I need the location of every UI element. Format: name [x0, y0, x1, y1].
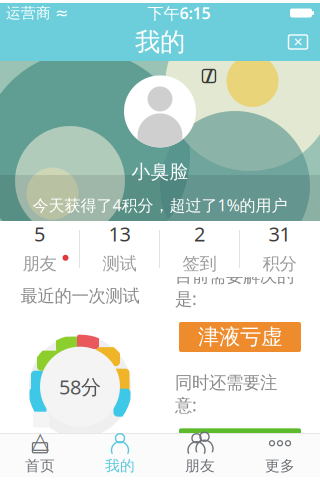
button[interactable]: 我的: [80, 434, 160, 477]
staticText: 最近的一次测试: [20, 285, 139, 307]
button[interactable]: 31: [240, 221, 320, 277]
staticText: 同时还需要注意:: [175, 372, 277, 416]
button[interactable]: Messages: [276, 23, 320, 61]
button[interactable]: 13: [80, 221, 160, 277]
staticText: 小臭脸: [131, 160, 188, 183]
staticText: 签到: [182, 253, 216, 274]
staticText: 58分: [59, 373, 101, 400]
staticText: 积分: [262, 253, 296, 274]
staticText: ✕: [293, 35, 303, 49]
staticText: 气虚: [219, 430, 261, 456]
button[interactable]: 2: [160, 221, 240, 277]
staticText: 目前需要解决的是:: [175, 266, 294, 310]
staticText: 31: [268, 221, 290, 247]
staticText: 今天获得了4积分，超过了1%的用户: [32, 194, 287, 215]
staticText: 我的: [105, 457, 135, 475]
button[interactable]: 5: [0, 221, 80, 277]
button[interactable]: Edit profile: [192, 61, 226, 91]
button[interactable]: 更多: [240, 434, 320, 477]
button[interactable]: 津液亏虚: [179, 322, 301, 352]
staticText: 13: [108, 221, 130, 247]
staticText: 首页: [25, 457, 55, 475]
staticText: 下午6:15: [147, 2, 210, 24]
staticText: /: [205, 64, 212, 87]
staticText: △: [31, 427, 48, 453]
button[interactable]: △: [0, 434, 80, 477]
staticText: 朋友: [22, 253, 56, 274]
button[interactable]: 气虚: [179, 428, 301, 458]
staticText: 5: [34, 221, 45, 247]
button[interactable]: 朋友: [160, 434, 240, 477]
staticText: 测试: [102, 253, 136, 274]
staticText: 朋友: [185, 457, 215, 475]
staticText: 津液亏虚: [198, 324, 282, 350]
staticText: 我的: [135, 26, 185, 57]
staticText: ≈: [55, 4, 68, 22]
staticText: 更多: [265, 457, 295, 475]
staticText: 2: [194, 221, 205, 247]
staticText: 运营商: [6, 4, 51, 22]
